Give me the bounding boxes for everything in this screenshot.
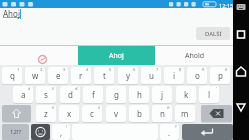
button[interactable]: Ahoj bbox=[78, 46, 155, 65]
staticText: 1 bbox=[17, 67, 20, 72]
staticText: y bbox=[126, 70, 131, 81]
button[interactable]: p bbox=[210, 67, 230, 84]
button[interactable]: t bbox=[94, 67, 114, 84]
staticText: z bbox=[44, 108, 48, 119]
button[interactable]: b bbox=[129, 105, 149, 122]
staticText: g bbox=[114, 89, 119, 100]
staticText: i bbox=[173, 70, 176, 81]
button[interactable] bbox=[182, 124, 233, 140]
staticText: DALŠÍ bbox=[205, 30, 222, 38]
staticText: 7 bbox=[156, 67, 159, 72]
staticText: 3 bbox=[63, 67, 66, 72]
button[interactable]: , bbox=[52, 124, 70, 140]
staticText: w bbox=[32, 70, 39, 81]
staticText: 9 bbox=[202, 67, 205, 72]
button[interactable]: e bbox=[48, 67, 68, 84]
button[interactable] bbox=[233, 100, 249, 116]
staticText: j bbox=[161, 89, 164, 100]
button[interactable]: y bbox=[118, 67, 138, 84]
staticText: 5 bbox=[109, 67, 112, 72]
staticText: l bbox=[208, 89, 211, 100]
button[interactable]: s bbox=[36, 86, 56, 103]
staticText: k bbox=[184, 89, 189, 100]
staticText: ň bbox=[167, 105, 170, 110]
button[interactable] bbox=[233, 63, 249, 79]
staticText: e bbox=[56, 70, 61, 81]
staticText: 2 bbox=[40, 67, 43, 72]
staticText: 0 bbox=[225, 67, 228, 72]
staticText: b bbox=[137, 108, 142, 119]
staticText: q bbox=[10, 70, 15, 81]
button[interactable]: . bbox=[160, 124, 179, 140]
staticText: ž bbox=[52, 105, 54, 110]
staticText: Ahold bbox=[185, 51, 205, 61]
button[interactable]: 12!? bbox=[2, 124, 29, 140]
staticText: 4 bbox=[86, 67, 89, 72]
button[interactable]: z bbox=[36, 105, 56, 122]
staticText: d bbox=[68, 89, 73, 100]
button[interactable]: k bbox=[176, 86, 196, 103]
button[interactable] bbox=[233, 26, 249, 42]
staticText: m bbox=[181, 108, 189, 119]
staticText: ? bbox=[175, 124, 177, 129]
button[interactable]: o bbox=[187, 67, 207, 84]
staticText: Ahoj bbox=[3, 8, 20, 19]
button[interactable]: j bbox=[152, 86, 172, 103]
button[interactable]: Ahold bbox=[170, 46, 220, 65]
staticText: v bbox=[114, 108, 119, 119]
button[interactable] bbox=[201, 105, 232, 122]
staticText: ' bbox=[216, 86, 217, 91]
staticText: p bbox=[218, 70, 223, 81]
staticText: s bbox=[44, 89, 48, 100]
staticText: t bbox=[103, 70, 106, 81]
staticText: r bbox=[79, 70, 83, 81]
staticText: 12:15 bbox=[219, 2, 234, 9]
staticText: ď bbox=[75, 86, 78, 91]
button[interactable]: h bbox=[129, 86, 149, 103]
button[interactable]: m bbox=[175, 105, 195, 122]
button[interactable]: q bbox=[2, 67, 22, 84]
staticText: , bbox=[60, 127, 63, 138]
button[interactable]: n bbox=[152, 105, 172, 122]
button[interactable]: c bbox=[82, 105, 102, 122]
button[interactable]: g bbox=[106, 86, 126, 103]
staticText: u bbox=[149, 70, 154, 81]
button[interactable]: r bbox=[71, 67, 91, 84]
staticText: c bbox=[90, 108, 94, 119]
staticText: o bbox=[195, 70, 200, 81]
staticText: . bbox=[168, 127, 171, 138]
staticText: č bbox=[98, 105, 100, 110]
staticText: á bbox=[28, 86, 31, 91]
staticText: š bbox=[52, 86, 54, 91]
button[interactable]: d bbox=[60, 86, 80, 103]
button[interactable]: u bbox=[141, 67, 161, 84]
staticText: 8 bbox=[179, 67, 182, 72]
staticText: 6 bbox=[133, 67, 136, 72]
staticText: n bbox=[160, 108, 165, 119]
staticText: Ahoj bbox=[109, 51, 124, 61]
button[interactable]: x bbox=[59, 105, 79, 122]
button[interactable]: l bbox=[199, 86, 219, 103]
button[interactable]: i bbox=[164, 67, 184, 84]
button[interactable]: w bbox=[25, 67, 45, 84]
staticText: a bbox=[21, 89, 26, 100]
button[interactable] bbox=[2, 105, 31, 122]
staticText: f bbox=[92, 89, 95, 100]
button[interactable]: f bbox=[83, 86, 103, 103]
staticText: h bbox=[137, 89, 142, 100]
staticText: 12!? bbox=[10, 128, 22, 136]
staticText: ! bbox=[66, 124, 68, 129]
staticText: x bbox=[67, 108, 72, 119]
button[interactable]: DALŠÍ bbox=[196, 27, 230, 40]
button[interactable]: a bbox=[13, 86, 33, 103]
button[interactable] bbox=[31, 124, 50, 140]
button[interactable]: v bbox=[106, 105, 126, 122]
